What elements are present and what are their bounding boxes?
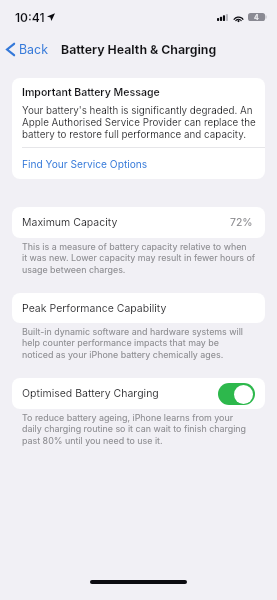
staticText: This is a measure of battery capacity re…	[22, 241, 256, 276]
button[interactable]: Peak Performance Capability	[12, 293, 265, 323]
button[interactable]: Back	[4, 40, 52, 58]
button[interactable]: Optimised Battery Charging toggle	[218, 383, 255, 405]
staticText: Important Battery Message	[22, 86, 160, 99]
staticText: Your battery's health is significantly d…	[22, 105, 256, 141]
staticText: 72%	[230, 216, 253, 229]
staticText: Find Your Service Options	[22, 158, 148, 170]
staticText: Built-in dynamic software and hardware s…	[22, 326, 244, 361]
staticText: Back	[19, 42, 48, 57]
staticText: Maximum Capacity	[22, 216, 118, 229]
button[interactable]: Find Your Service Options	[12, 148, 265, 179]
staticText: 4	[254, 13, 259, 21]
staticText: Peak Performance Capability	[22, 302, 167, 315]
staticText: 10:41	[15, 10, 45, 25]
button[interactable]: Optimised Battery Charging	[12, 378, 265, 409]
staticText: Battery Health & Charging	[61, 42, 217, 57]
staticText: To reduce battery ageing, iPhone learns …	[22, 412, 247, 447]
staticText: Optimised Battery Charging	[22, 387, 159, 400]
button[interactable]: Maximum Capacity	[12, 207, 265, 238]
